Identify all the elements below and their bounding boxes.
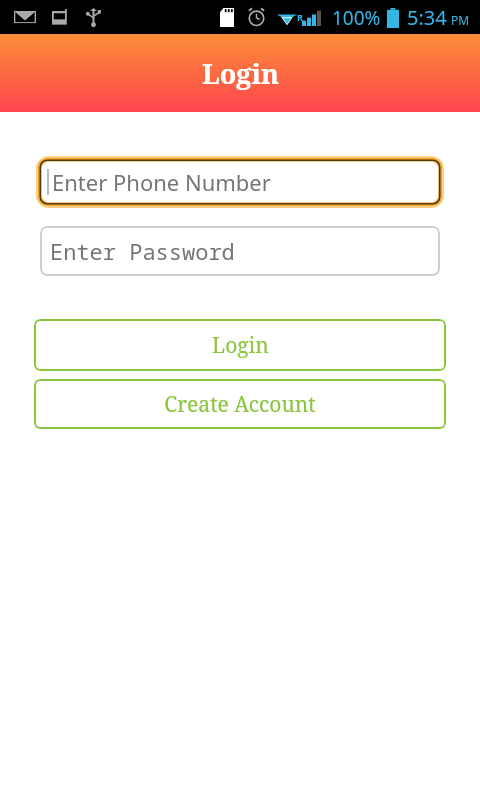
- other: Battery: [387, 8, 399, 28]
- staticText: 100%: [332, 5, 381, 31]
- staticText: 5:34: [407, 4, 447, 31]
- other: Signal: [302, 10, 322, 26]
- other: Wi-Fi: [276, 9, 298, 27]
- staticText: Create Account: [164, 390, 316, 419]
- staticText: Enter Password: [50, 236, 235, 266]
- staticText: R: [297, 11, 303, 23]
- staticText: Login: [212, 331, 269, 360]
- button[interactable]: Create Account: [34, 379, 446, 429]
- other: Mail: [14, 9, 36, 25]
- button[interactable]: Enter Password: [40, 226, 440, 276]
- other: Alarm: [247, 8, 266, 27]
- other: Storage: [220, 8, 234, 27]
- button[interactable]: Login: [34, 319, 446, 371]
- staticText: PM: [451, 12, 470, 28]
- staticText: Login: [202, 55, 279, 92]
- other: USB: [86, 8, 101, 26]
- other: Radio: [52, 9, 70, 26]
- staticText: Enter Phone Number: [52, 167, 271, 197]
